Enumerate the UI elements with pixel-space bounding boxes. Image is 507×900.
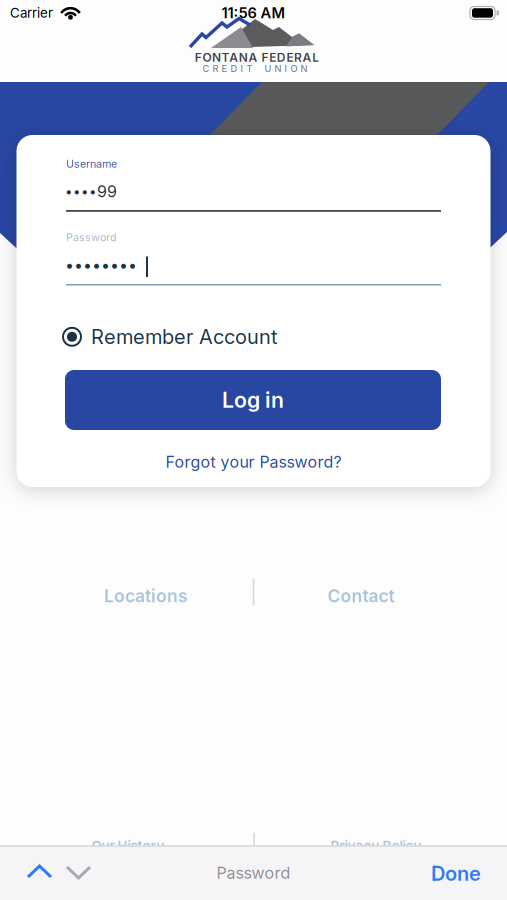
staticText: Contact	[327, 586, 394, 606]
staticText: Remember Account	[91, 325, 278, 349]
staticText: Privacy Policy	[330, 838, 421, 854]
staticText: C R E D I T U N I O N	[202, 63, 307, 74]
staticText: Password	[66, 231, 117, 244]
button[interactable]: Our History	[91, 838, 164, 854]
staticText: ••••	[65, 184, 97, 199]
staticText: Done	[431, 862, 481, 885]
staticText: Locations	[104, 586, 188, 606]
button[interactable]: Previous field	[26, 864, 53, 879]
staticText: FONTANA FEDERAL	[195, 50, 319, 65]
staticText: Username	[66, 157, 117, 170]
staticText: Forgot your Password?	[165, 453, 341, 471]
button[interactable]: Privacy Policy	[330, 838, 421, 854]
staticText: Carrier	[10, 5, 53, 21]
staticText: ••••••••	[65, 255, 137, 274]
button[interactable]: Next field	[65, 865, 92, 880]
button[interactable]: Username	[65, 158, 441, 212]
button[interactable]: Locations	[104, 586, 188, 606]
staticText: 99	[97, 182, 117, 201]
button[interactable]: Remember Account	[63, 325, 278, 349]
button[interactable]: Password	[65, 232, 441, 286]
button[interactable]: Forgot your Password?	[165, 453, 341, 471]
staticText: Our History	[91, 838, 164, 854]
button[interactable]: Log in	[65, 370, 441, 430]
staticText: 11:56 AM	[221, 4, 285, 22]
button[interactable]: Done	[431, 862, 481, 885]
staticText: Password	[216, 864, 290, 882]
staticText: Log in	[222, 387, 284, 413]
button[interactable]: Contact	[327, 586, 394, 606]
